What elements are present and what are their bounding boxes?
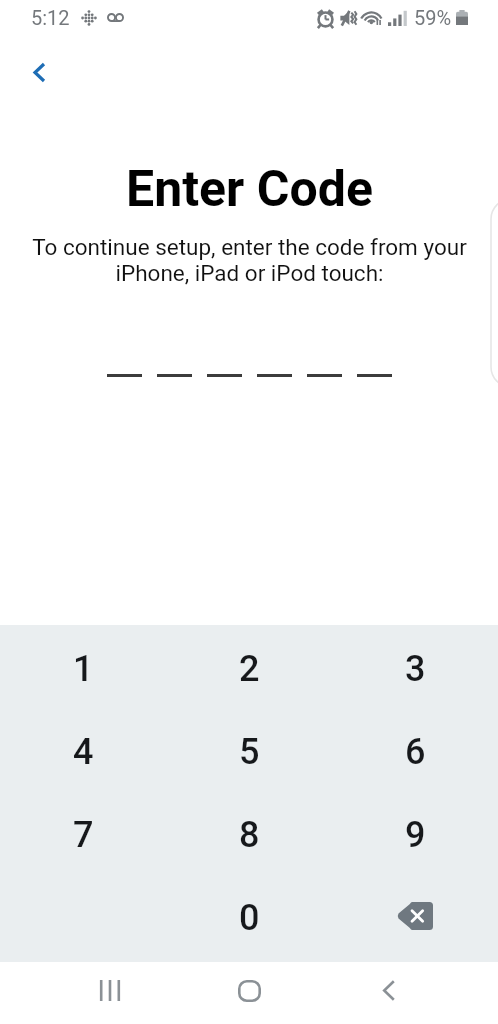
button[interactable]: 2 — [166, 627, 332, 710]
staticText: 6 — [405, 731, 426, 773]
button[interactable]: 3 — [332, 627, 498, 710]
button[interactable]: 5 — [166, 710, 332, 793]
button[interactable]: Recent apps — [82, 962, 138, 1019]
staticText: Enter Code — [126, 160, 373, 219]
button[interactable]: Back — [360, 962, 417, 1019]
staticText: 9 — [405, 814, 426, 856]
button[interactable]: 4 — [0, 710, 166, 793]
button[interactable]: Delete — [332, 876, 498, 959]
staticText: 8 — [239, 814, 260, 856]
staticText: 7 — [73, 814, 94, 856]
staticText: 5 — [239, 731, 260, 773]
button[interactable]: 1 — [0, 627, 166, 710]
button[interactable]: 7 — [0, 793, 166, 876]
button[interactable]: 6 — [332, 710, 498, 793]
staticText: 1 — [73, 648, 94, 690]
button[interactable]: 0 — [166, 876, 332, 959]
staticText: 3 — [405, 648, 426, 690]
staticText: 4 — [73, 731, 94, 773]
button[interactable]: Back — [16, 49, 62, 95]
staticText: 5:12 — [31, 6, 70, 29]
staticText: To continue setup, enter the code from y… — [32, 234, 467, 286]
button[interactable]: Home — [221, 962, 278, 1019]
staticText: 59% — [414, 6, 452, 29]
staticText: 2 — [239, 648, 260, 690]
button[interactable]: Code entry field — [107, 352, 392, 396]
button[interactable]: 9 — [332, 793, 498, 876]
staticText: 0 — [239, 897, 260, 939]
button[interactable]: 8 — [166, 793, 332, 876]
